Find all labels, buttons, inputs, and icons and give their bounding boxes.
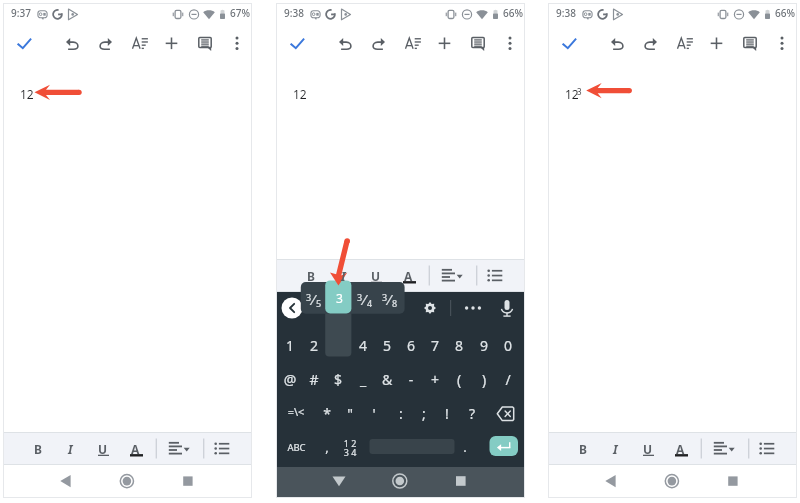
button[interactable]: Bold bbox=[568, 432, 596, 465]
button[interactable]: Text formatting bbox=[122, 29, 155, 59]
button[interactable]: Key bbox=[326, 398, 350, 430]
button[interactable]: Text formatting bbox=[667, 29, 700, 59]
button[interactable]: Key bbox=[399, 398, 423, 430]
button[interactable]: Recents bbox=[173, 466, 203, 496]
button[interactable]: Key bbox=[399, 330, 423, 362]
button[interactable]: Three fifths bbox=[301, 282, 327, 314]
button[interactable]: Text formatting bbox=[395, 29, 428, 59]
button[interactable]: Italic bbox=[600, 432, 628, 465]
button[interactable]: Underline bbox=[634, 432, 662, 465]
button[interactable]: Home bbox=[386, 469, 416, 497]
button[interactable]: Insert bbox=[155, 29, 188, 59]
button[interactable]: Key bbox=[472, 364, 496, 396]
button[interactable]: Key bbox=[278, 398, 302, 430]
button[interactable]: Key bbox=[326, 330, 350, 362]
button[interactable]: Key bbox=[278, 330, 302, 362]
button[interactable]: More options bbox=[494, 29, 525, 59]
button[interactable]: Bulleted list bbox=[753, 432, 785, 465]
button[interactable]: Comment bbox=[733, 29, 766, 59]
staticText: 9:38 bbox=[284, 6, 304, 20]
button[interactable]: Paragraph alignment bbox=[434, 259, 468, 292]
button[interactable]: Text colour bbox=[667, 432, 695, 465]
button[interactable]: Voice input bbox=[493, 292, 523, 323]
button[interactable]: Key bbox=[423, 364, 447, 396]
button[interactable]: Home bbox=[113, 466, 143, 496]
button[interactable]: Key bbox=[326, 364, 350, 396]
button[interactable]: Key bbox=[496, 364, 520, 396]
button[interactable]: Key bbox=[351, 330, 375, 362]
button[interactable]: Key bbox=[496, 330, 520, 362]
button[interactable]: Key bbox=[447, 364, 471, 396]
button[interactable]: Home bbox=[658, 466, 688, 496]
button[interactable]: Three quarters bbox=[351, 282, 377, 314]
button[interactable]: Key bbox=[447, 330, 471, 362]
button[interactable]: Key bbox=[302, 364, 326, 396]
button[interactable]: Text colour bbox=[122, 432, 150, 465]
button[interactable]: Undo bbox=[600, 29, 634, 59]
staticText: - bbox=[398, 370, 424, 390]
button[interactable]: Undo bbox=[55, 29, 89, 59]
button[interactable]: Insert bbox=[428, 29, 461, 59]
button[interactable]: Hide keyboard bbox=[324, 469, 354, 497]
button[interactable]: Redo bbox=[362, 29, 396, 59]
button[interactable]: Key bbox=[447, 398, 471, 430]
button[interactable]: Key bbox=[423, 398, 447, 430]
button[interactable]: Comment bbox=[461, 29, 494, 59]
button[interactable]: Comma bbox=[320, 432, 340, 464]
button[interactable]: Key bbox=[496, 398, 520, 430]
button[interactable]: Bold bbox=[23, 432, 51, 465]
button[interactable]: Key bbox=[351, 364, 375, 396]
button[interactable]: Enter bbox=[490, 434, 519, 460]
button[interactable]: Key bbox=[302, 330, 326, 362]
button[interactable]: Undo bbox=[328, 29, 362, 59]
button[interactable]: Paragraph alignment bbox=[706, 432, 740, 465]
button[interactable]: Back bbox=[596, 466, 626, 496]
button[interactable]: Underline bbox=[362, 259, 390, 292]
button[interactable]: Recents bbox=[718, 466, 748, 496]
button[interactable]: Text colour bbox=[395, 259, 423, 292]
button[interactable]: Back bbox=[279, 292, 307, 323]
staticText: 3 bbox=[379, 291, 390, 303]
button[interactable]: Recents bbox=[446, 469, 476, 497]
button[interactable]: Bulleted list bbox=[208, 432, 240, 465]
button[interactable]: Underline bbox=[89, 432, 117, 465]
button[interactable]: Key bbox=[302, 398, 326, 430]
button[interactable]: Letters bbox=[278, 432, 318, 464]
button[interactable]: Key bbox=[375, 330, 399, 362]
button[interactable]: Done bbox=[554, 29, 590, 59]
staticText: ? bbox=[459, 404, 485, 424]
button[interactable]: Back bbox=[51, 466, 81, 496]
button[interactable]: Key bbox=[375, 364, 399, 396]
button[interactable]: Bulleted list bbox=[481, 259, 513, 292]
button[interactable]: Paragraph alignment bbox=[161, 432, 195, 465]
button[interactable]: Three eighths bbox=[377, 282, 404, 314]
staticText: 66% bbox=[775, 6, 795, 20]
button[interactable]: Key bbox=[472, 398, 496, 430]
button[interactable]: Redo bbox=[89, 29, 123, 59]
button[interactable]: Italic bbox=[328, 259, 356, 292]
button[interactable]: More options bbox=[221, 29, 252, 59]
staticText: 3 4 bbox=[340, 446, 360, 457]
button[interactable]: Key bbox=[278, 364, 302, 396]
button[interactable]: Key bbox=[423, 330, 447, 362]
button[interactable]: Numbers bbox=[340, 432, 364, 464]
button[interactable]: Key bbox=[351, 398, 375, 430]
button[interactable]: Space bbox=[370, 432, 455, 464]
button[interactable]: Period bbox=[456, 432, 476, 464]
staticText: 0 bbox=[495, 336, 521, 356]
button[interactable]: Insert bbox=[700, 29, 733, 59]
button[interactable]: More options bbox=[766, 29, 797, 59]
button[interactable]: Done bbox=[9, 29, 45, 59]
button[interactable]: Done bbox=[282, 29, 318, 59]
button[interactable]: Keyboard settings bbox=[416, 292, 444, 323]
button[interactable]: Bold bbox=[296, 259, 324, 292]
button[interactable]: Key bbox=[472, 330, 496, 362]
button[interactable]: Italic bbox=[55, 432, 83, 465]
button[interactable]: Redo bbox=[634, 29, 668, 59]
staticText: 66% bbox=[503, 6, 523, 20]
button[interactable]: Comment bbox=[188, 29, 221, 59]
button[interactable]: Key bbox=[399, 364, 423, 396]
button[interactable]: More keyboard options bbox=[459, 292, 487, 323]
button[interactable]: Superscript three bbox=[325, 280, 351, 313]
